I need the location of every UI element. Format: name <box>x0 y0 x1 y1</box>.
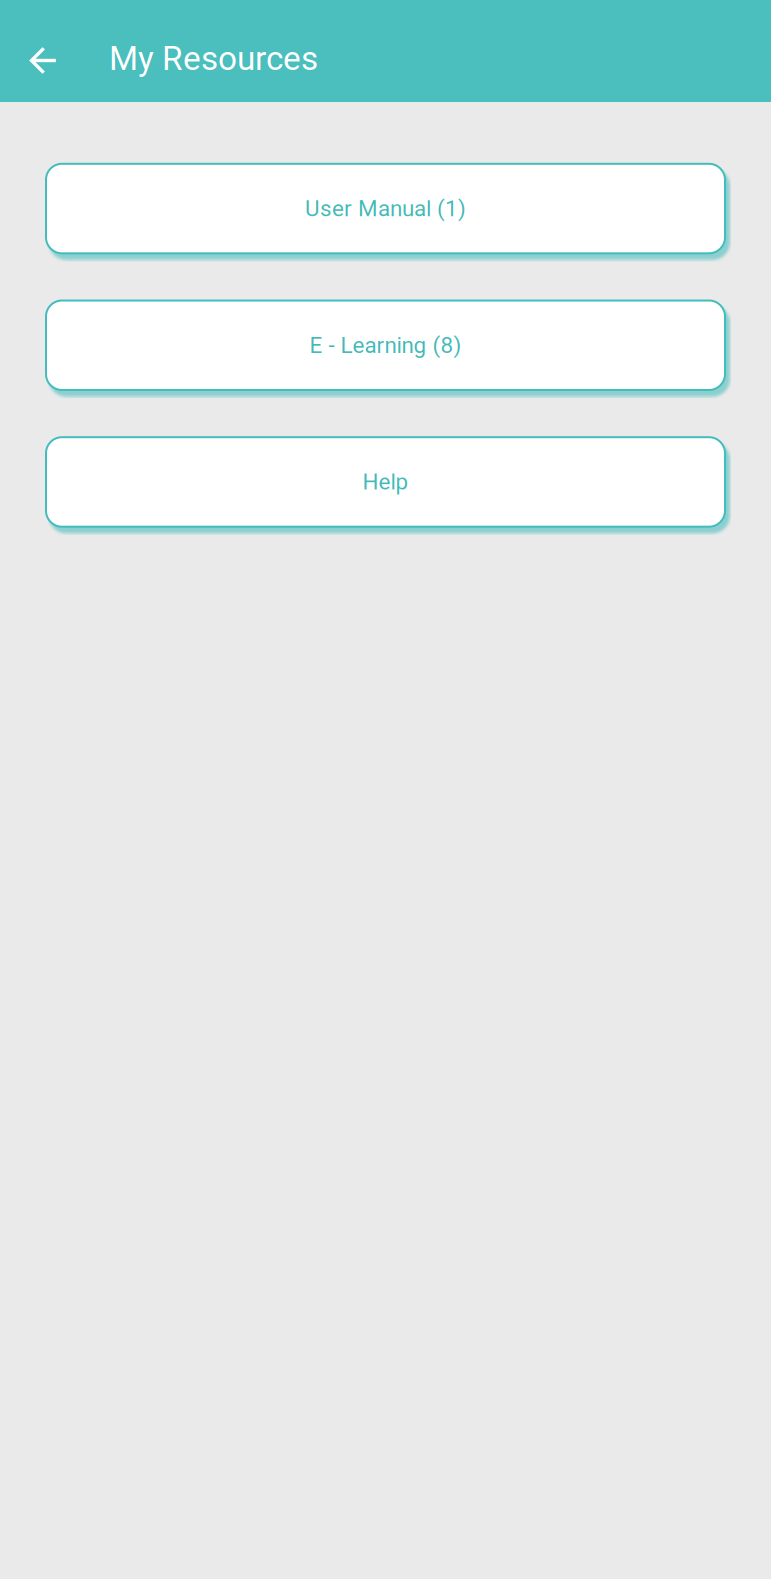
staticText: My Resources <box>109 39 318 78</box>
staticText: User Manual (1) <box>305 195 466 222</box>
staticText: E - Learning (8) <box>309 332 461 358</box>
staticText: Help <box>362 469 408 495</box>
button[interactable]: Help <box>46 437 725 527</box>
button[interactable]: User Manual (1) <box>46 164 725 253</box>
button[interactable]: E - Learning (8) <box>46 300 725 390</box>
button[interactable]: Back <box>16 34 68 86</box>
